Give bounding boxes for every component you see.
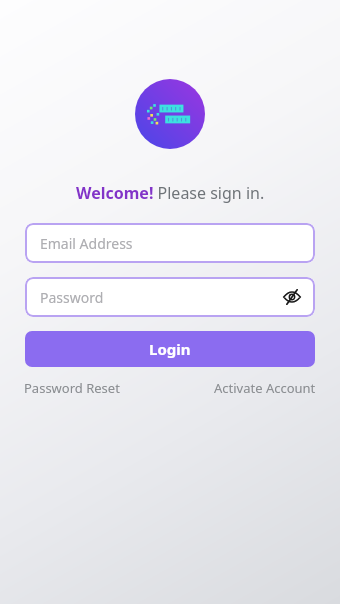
button[interactable]: Login bbox=[25, 331, 315, 367]
staticText: Password bbox=[40, 288, 104, 307]
button[interactable]: Password Reset bbox=[24, 379, 120, 397]
staticText: Welcome! Please sign in. bbox=[76, 182, 265, 204]
button[interactable]: Password bbox=[25, 277, 315, 317]
staticText: Password Reset bbox=[24, 379, 120, 397]
staticText: Email Address bbox=[40, 234, 133, 253]
button[interactable]: Show password bbox=[277, 282, 307, 312]
button[interactable]: Activate Account bbox=[214, 379, 316, 397]
staticText: Login bbox=[149, 339, 191, 359]
staticText: Activate Account bbox=[214, 379, 316, 397]
button[interactable]: Email Address bbox=[25, 223, 315, 263]
